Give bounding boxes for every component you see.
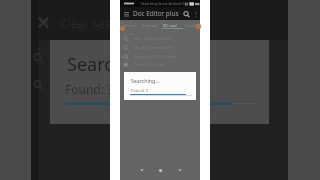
button[interactable]: Back [136, 165, 147, 175]
staticText: May 8 5 summary.pdf [134, 45, 173, 50]
button[interactable]: Recent [120, 20, 140, 31]
staticText: Expenses Q3 2021 notes [134, 54, 177, 59]
staticText: Internal [143, 23, 158, 28]
button[interactable]: 2021 A Annual Report [120, 34, 200, 43]
button[interactable]: SD card [160, 20, 180, 31]
button[interactable]: Open navigation drawer [122, 9, 131, 18]
staticText: Files and IT Codes [134, 62, 166, 67]
button[interactable]: May 8 5 summary.pdf [120, 43, 200, 52]
button[interactable]: Home [155, 165, 166, 175]
staticText: 2021 A Annual Report [134, 36, 172, 41]
staticText: Searching Secret Android DEVICE [141, 1, 194, 6]
button[interactable]: Recents [174, 165, 185, 175]
button[interactable]: Files and IT Codes [120, 60, 200, 69]
staticText: Searching... [131, 77, 160, 84]
staticText: Recent [124, 32, 135, 36]
button[interactable]: Cloud [180, 20, 200, 31]
staticText: Doc Editor plus [133, 9, 179, 18]
button[interactable]: Search [181, 9, 191, 19]
staticText: Clear sear [60, 15, 117, 31]
staticText: SD card [163, 23, 177, 28]
button[interactable]: More options [192, 10, 200, 18]
staticText: Found: 3 [131, 88, 149, 94]
staticText: Search [67, 52, 124, 77]
staticText: Cloud [185, 23, 196, 28]
staticText: Found: 3 [65, 81, 114, 97]
button[interactable]: Expenses Q3 2021 notes [120, 52, 200, 61]
staticText: Recent [124, 23, 137, 28]
button[interactable]: Internal [140, 20, 160, 31]
